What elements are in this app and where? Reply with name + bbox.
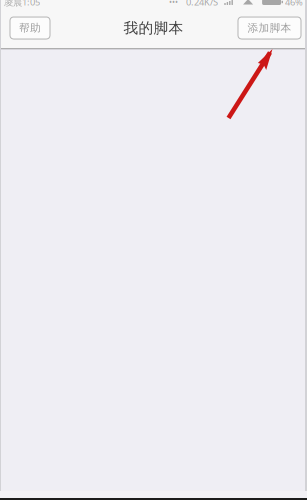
staticText: 凌晨1:05: [4, 0, 40, 8]
staticText: 添加脚本: [247, 21, 291, 34]
staticText: 帮助: [19, 21, 41, 34]
staticText: 46%: [285, 0, 303, 8]
staticText: 0.24K/S: [186, 0, 218, 8]
button[interactable]: 添加脚本: [238, 17, 301, 39]
staticText: •••: [169, 0, 178, 7]
staticText: 我的脚本: [123, 19, 183, 37]
button[interactable]: 帮助: [10, 17, 50, 39]
